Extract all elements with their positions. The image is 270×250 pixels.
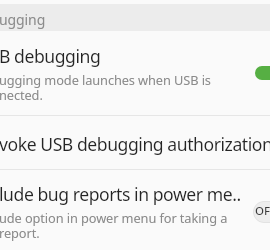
- button[interactable]: ugging: [0, 4, 270, 31]
- button[interactable]: Bug report in power menu off: [253, 201, 270, 223]
- button[interactable]: lude bug reports in power me..: [0, 170, 270, 250]
- button[interactable]: USB debugging on: [255, 66, 270, 80]
- staticText: ugging: [0, 10, 46, 29]
- staticText: OFF: [255, 203, 270, 219]
- staticText: B debugging: [0, 44, 101, 68]
- button[interactable]: voke USB debugging authorizations: [0, 116, 270, 169]
- staticText: voke USB debugging authorizations: [0, 132, 270, 156]
- staticText: ugging mode launches when USB is nected.: [0, 71, 211, 104]
- button[interactable]: B debugging: [0, 31, 270, 115]
- staticText: lude bug reports in power me..: [0, 182, 241, 206]
- staticText: ude option in power menu for taking a re…: [0, 209, 228, 242]
